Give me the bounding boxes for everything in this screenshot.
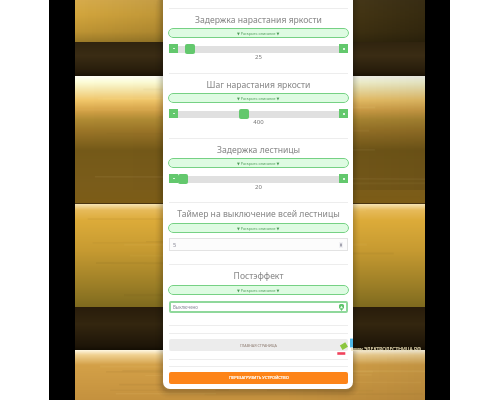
staticText: Постэффект [169,270,348,282]
button[interactable]: ▼ Раскрыть описание ▼ [168,93,349,103]
button[interactable]: Ползунок [239,109,249,119]
button[interactable]: 5 [169,238,348,251]
staticText: ▼ Раскрыть описание ▼ [237,96,280,101]
button[interactable]: ▼ Раскрыть описание ▼ [168,158,349,168]
button[interactable]: ГЛАВНАЯ СТРАНИЦА [169,339,348,351]
other: Изменить значение [339,242,343,248]
button[interactable]: Уменьшить [169,44,178,53]
staticText: ПЕРЕЗАГРУЗИТЬ УСТРОЙСТВО [229,375,289,381]
button[interactable]: Увеличить [339,174,348,183]
staticText: Выключено [173,304,198,310]
staticText: Задержка лестницы [169,144,348,156]
button[interactable]: Увеличить [339,44,348,53]
staticText: Таймер на выключение всей лестницы [169,208,348,220]
staticText: ▼ Раскрыть описание ▼ [237,226,280,231]
button[interactable]: ▼ Раскрыть описание ▼ [168,28,349,38]
staticText: 20 [169,183,348,191]
staticText: 25 [169,53,348,61]
staticText: ▼ Раскрыть описание ▼ [237,161,280,166]
staticText: Задержка нарастания яркости [169,14,348,26]
staticText: Шаг нарастания яркости [169,79,348,91]
button[interactable]: ▼ Раскрыть описание ▼ [168,223,349,233]
button[interactable]: Выключено [169,301,348,313]
button[interactable]: Уменьшить [169,174,178,183]
staticText: www.ЭЛЕКТРОЛЕСТНИЦА.РФ [351,346,422,353]
staticText: 400 [169,118,348,126]
button[interactable]: Ползунок [178,174,188,184]
button[interactable]: Ползунок [185,44,195,54]
staticText: ▼ Раскрыть описание ▼ [237,31,280,36]
button[interactable]: Увеличить [339,109,348,118]
staticText: ▼ Раскрыть описание ▼ [237,288,280,293]
button[interactable]: ▼ Раскрыть описание ▼ [168,285,349,295]
staticText: 5 [173,241,177,248]
staticText: ГЛАВНАЯ СТРАНИЦА [240,343,277,348]
button[interactable]: ПЕРЕЗАГРУЗИТЬ УСТРОЙСТВО [169,372,348,384]
button[interactable]: Уменьшить [169,109,178,118]
